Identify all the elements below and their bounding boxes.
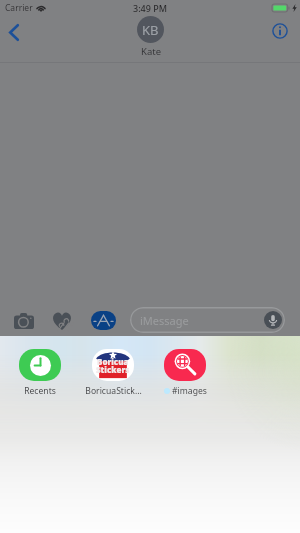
staticText: Recents (24, 385, 56, 397)
staticText: Carrier (5, 2, 33, 14)
button[interactable]: Record audio (264, 311, 282, 329)
staticText: Stickers (96, 364, 130, 375)
staticText: KB (142, 21, 159, 39)
button[interactable]: Details (268, 19, 292, 43)
button[interactable]: Recents (8, 349, 72, 397)
button[interactable]: App Store (91, 311, 116, 330)
staticText: #images (172, 385, 207, 397)
button[interactable]: KB (137, 16, 164, 58)
staticText: BoricuaStick… (85, 385, 142, 397)
button[interactable]: Camera (11, 308, 36, 333)
button[interactable]: #images (153, 349, 217, 397)
staticText: Boricua (97, 356, 129, 367)
button[interactable]: Boricua (81, 349, 145, 397)
button[interactable]: iMessage (130, 307, 285, 333)
button[interactable]: Digital Touch (49, 309, 75, 333)
staticText: 3:49 PM (133, 2, 167, 14)
staticText: Kate (141, 45, 161, 58)
staticText: iMessage (140, 313, 189, 328)
button[interactable]: Back (2, 20, 26, 44)
